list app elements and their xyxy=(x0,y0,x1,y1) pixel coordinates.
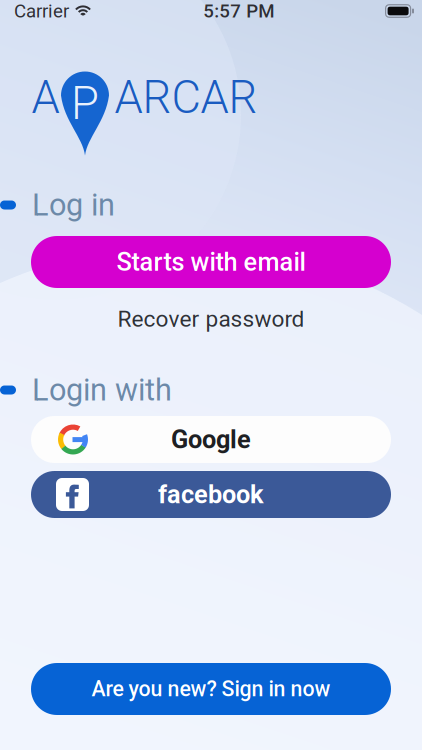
staticText: Login with xyxy=(32,372,172,408)
button[interactable]: Are you new? Sign in now xyxy=(31,663,391,715)
staticText: Are you new? Sign in now xyxy=(91,676,330,701)
staticText: Google xyxy=(171,425,251,454)
staticText: Starts with email xyxy=(116,247,305,277)
staticText: ARCAR xyxy=(114,71,257,124)
staticText: A xyxy=(31,71,59,124)
staticText: 5:57 PM xyxy=(203,0,274,22)
button[interactable]: facebook xyxy=(31,471,391,518)
button[interactable]: Google xyxy=(31,416,391,463)
staticText: Log in xyxy=(32,187,115,223)
staticText: Recover password xyxy=(117,306,304,332)
staticText: P xyxy=(71,77,99,130)
button[interactable]: Starts with email xyxy=(31,236,391,288)
staticText: Carrier xyxy=(14,0,69,22)
button[interactable]: Recover password xyxy=(31,305,391,333)
staticText: facebook xyxy=(158,480,264,509)
